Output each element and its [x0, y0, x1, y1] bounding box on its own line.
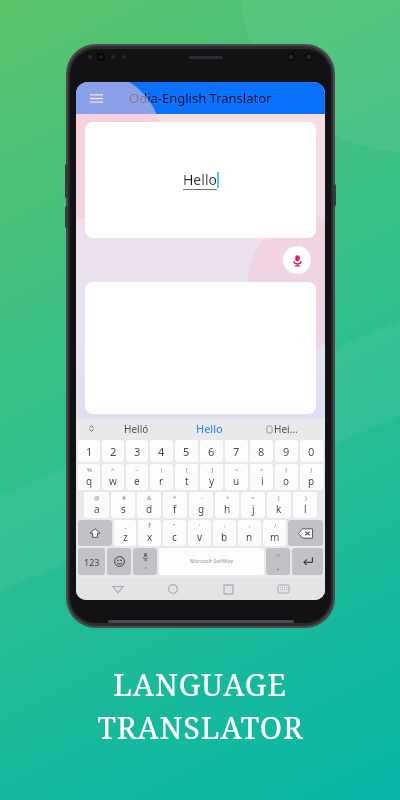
- button[interactable]: Open navigation menu: [76, 82, 325, 114]
- button[interactable]: Helló: [100, 418, 173, 439]
- staticText: LANGUAGE: [113, 664, 287, 705]
- button[interactable]: (: [267, 492, 291, 518]
- button[interactable]: Hide keyboard: [270, 578, 296, 600]
- button[interactable]: Backspace: [288, 520, 323, 546]
- staticText: @: [94, 494, 100, 502]
- button[interactable]: }: [300, 464, 323, 490]
- staticText: t: [185, 474, 189, 488]
- staticText: b: [221, 530, 228, 544]
- staticText: y: [209, 474, 215, 488]
- button[interactable]: Shift: [78, 520, 112, 546]
- staticText: &: [147, 494, 152, 502]
- button[interactable]: ~: [126, 464, 148, 490]
- button[interactable]: 4: [150, 440, 173, 462]
- button[interactable]: Emoji: [107, 548, 131, 575]
- button[interactable]: ]: [200, 464, 223, 490]
- button[interactable]: Voice input: [133, 548, 157, 575]
- staticText: g: [198, 502, 205, 516]
- button[interactable]: Period: [266, 548, 290, 575]
- button[interactable]: Microsoft SwiftKey: [159, 548, 264, 575]
- staticText: Odia-English Translator: [129, 89, 272, 107]
- button[interactable]: Back: [105, 578, 131, 600]
- button[interactable]: *: [163, 492, 187, 518]
- button[interactable]: 5: [175, 440, 198, 462]
- staticText: Microsoft SwiftKey: [190, 558, 234, 565]
- staticText: }: [310, 466, 313, 474]
- button[interactable]: /: [263, 520, 286, 546]
- button[interactable]: Hei…: [246, 418, 319, 439]
- button[interactable]: #: [111, 492, 135, 518]
- staticText: [: [186, 466, 188, 474]
- staticText: (: [278, 494, 280, 502]
- button[interactable]: Enter: [292, 548, 323, 575]
- button[interactable]: ₹: [138, 520, 161, 546]
- staticText: =: [251, 494, 255, 502]
- button[interactable]: @: [84, 492, 109, 518]
- staticText: +: [226, 494, 230, 502]
- staticText: w: [109, 474, 117, 488]
- button[interactable]: ": [163, 520, 186, 546]
- staticText: 4: [158, 444, 165, 459]
- button[interactable]: Recent apps: [215, 578, 241, 600]
- button[interactable]: [: [175, 464, 198, 490]
- staticText: 5: [183, 444, 190, 459]
- staticText: -: [201, 494, 203, 502]
- staticText: s: [121, 502, 126, 516]
- staticText: o: [283, 474, 290, 488]
- button[interactable]: <: [225, 464, 248, 490]
- button[interactable]: ;: [238, 520, 261, 546]
- staticText: .: [277, 560, 280, 572]
- button[interactable]: 0: [300, 440, 323, 462]
- button[interactable]: 3: [126, 440, 148, 462]
- button[interactable]: &: [137, 492, 161, 518]
- staticText: d: [146, 502, 153, 516]
- staticText: _: [124, 522, 127, 530]
- button[interactable]: Voice input: [283, 246, 311, 274]
- button[interactable]: 7: [225, 440, 248, 462]
- staticText: /: [274, 522, 277, 530]
- button[interactable]: Expand suggestions: [82, 418, 100, 439]
- staticText: 7: [233, 444, 240, 459]
- button[interactable]: Hello: [85, 122, 316, 238]
- button[interactable]: {: [275, 464, 298, 490]
- button[interactable]: 9: [275, 440, 298, 462]
- staticText: j: [252, 502, 255, 516]
- button[interactable]: %: [78, 464, 100, 490]
- button[interactable]: Open navigation menu: [87, 89, 105, 107]
- button[interactable]: _: [114, 520, 136, 546]
- staticText: k: [276, 502, 282, 516]
- button[interactable]: ': [188, 520, 211, 546]
- staticText: i: [261, 474, 264, 488]
- staticText: f: [173, 502, 177, 516]
- staticText: ): [305, 494, 307, 502]
- button[interactable]: -: [189, 492, 213, 518]
- staticText: m: [270, 530, 280, 544]
- button[interactable]: 1: [78, 440, 100, 462]
- button[interactable]: =: [241, 492, 265, 518]
- staticText: v: [197, 530, 203, 544]
- button[interactable]: >: [250, 464, 273, 490]
- button[interactable]: 6: [200, 440, 223, 462]
- button[interactable]: 2: [102, 440, 124, 462]
- staticText: :: [224, 522, 226, 530]
- staticText: Hei…: [274, 422, 298, 436]
- staticText: ,: [145, 561, 147, 571]
- button[interactable]: :: [213, 520, 236, 546]
- button[interactable]: 8: [250, 440, 273, 462]
- staticText: ~: [135, 466, 139, 474]
- staticText: e: [134, 474, 140, 488]
- staticText: %: [87, 466, 92, 474]
- staticText: c: [172, 530, 177, 544]
- button[interactable]: Hello: [173, 418, 246, 439]
- staticText: Hello: [183, 170, 217, 189]
- button[interactable]: +: [215, 492, 239, 518]
- button[interactable]: ): [293, 492, 317, 518]
- staticText: #: [122, 494, 126, 502]
- staticText: <: [235, 466, 239, 474]
- button[interactable]: Numbers: [78, 548, 105, 575]
- button[interactable]: Home: [160, 578, 186, 600]
- staticText: ]: [211, 466, 213, 474]
- button[interactable]: ^: [102, 464, 124, 490]
- button[interactable]: |: [150, 464, 173, 490]
